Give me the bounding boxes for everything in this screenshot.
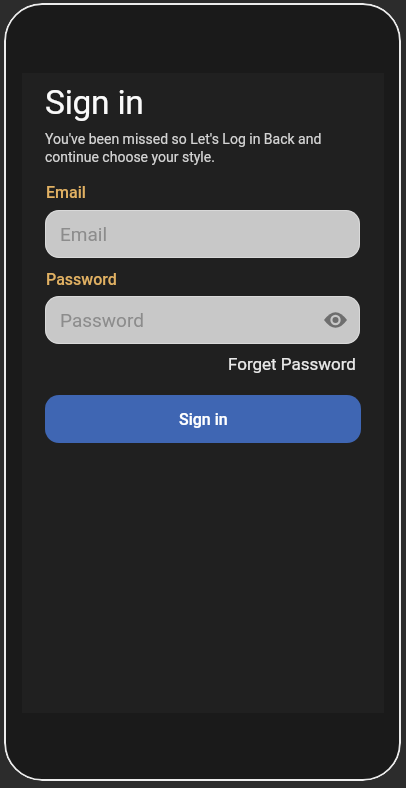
staticText: Password	[60, 309, 144, 331]
staticText: Password	[46, 270, 117, 289]
button[interactable]: Forget Password	[228, 354, 356, 374]
staticText: Sign in	[45, 83, 144, 122]
button[interactable]	[320, 305, 350, 335]
button[interactable]: Email	[45, 210, 360, 258]
staticText: You've been missed so Let's Log in Back …	[45, 131, 322, 166]
button[interactable]: Password	[45, 296, 360, 344]
button[interactable]: Sign in	[45, 395, 361, 443]
staticText: Email	[46, 183, 86, 202]
staticText: Email	[60, 223, 108, 245]
staticText: Sign in	[179, 410, 228, 429]
